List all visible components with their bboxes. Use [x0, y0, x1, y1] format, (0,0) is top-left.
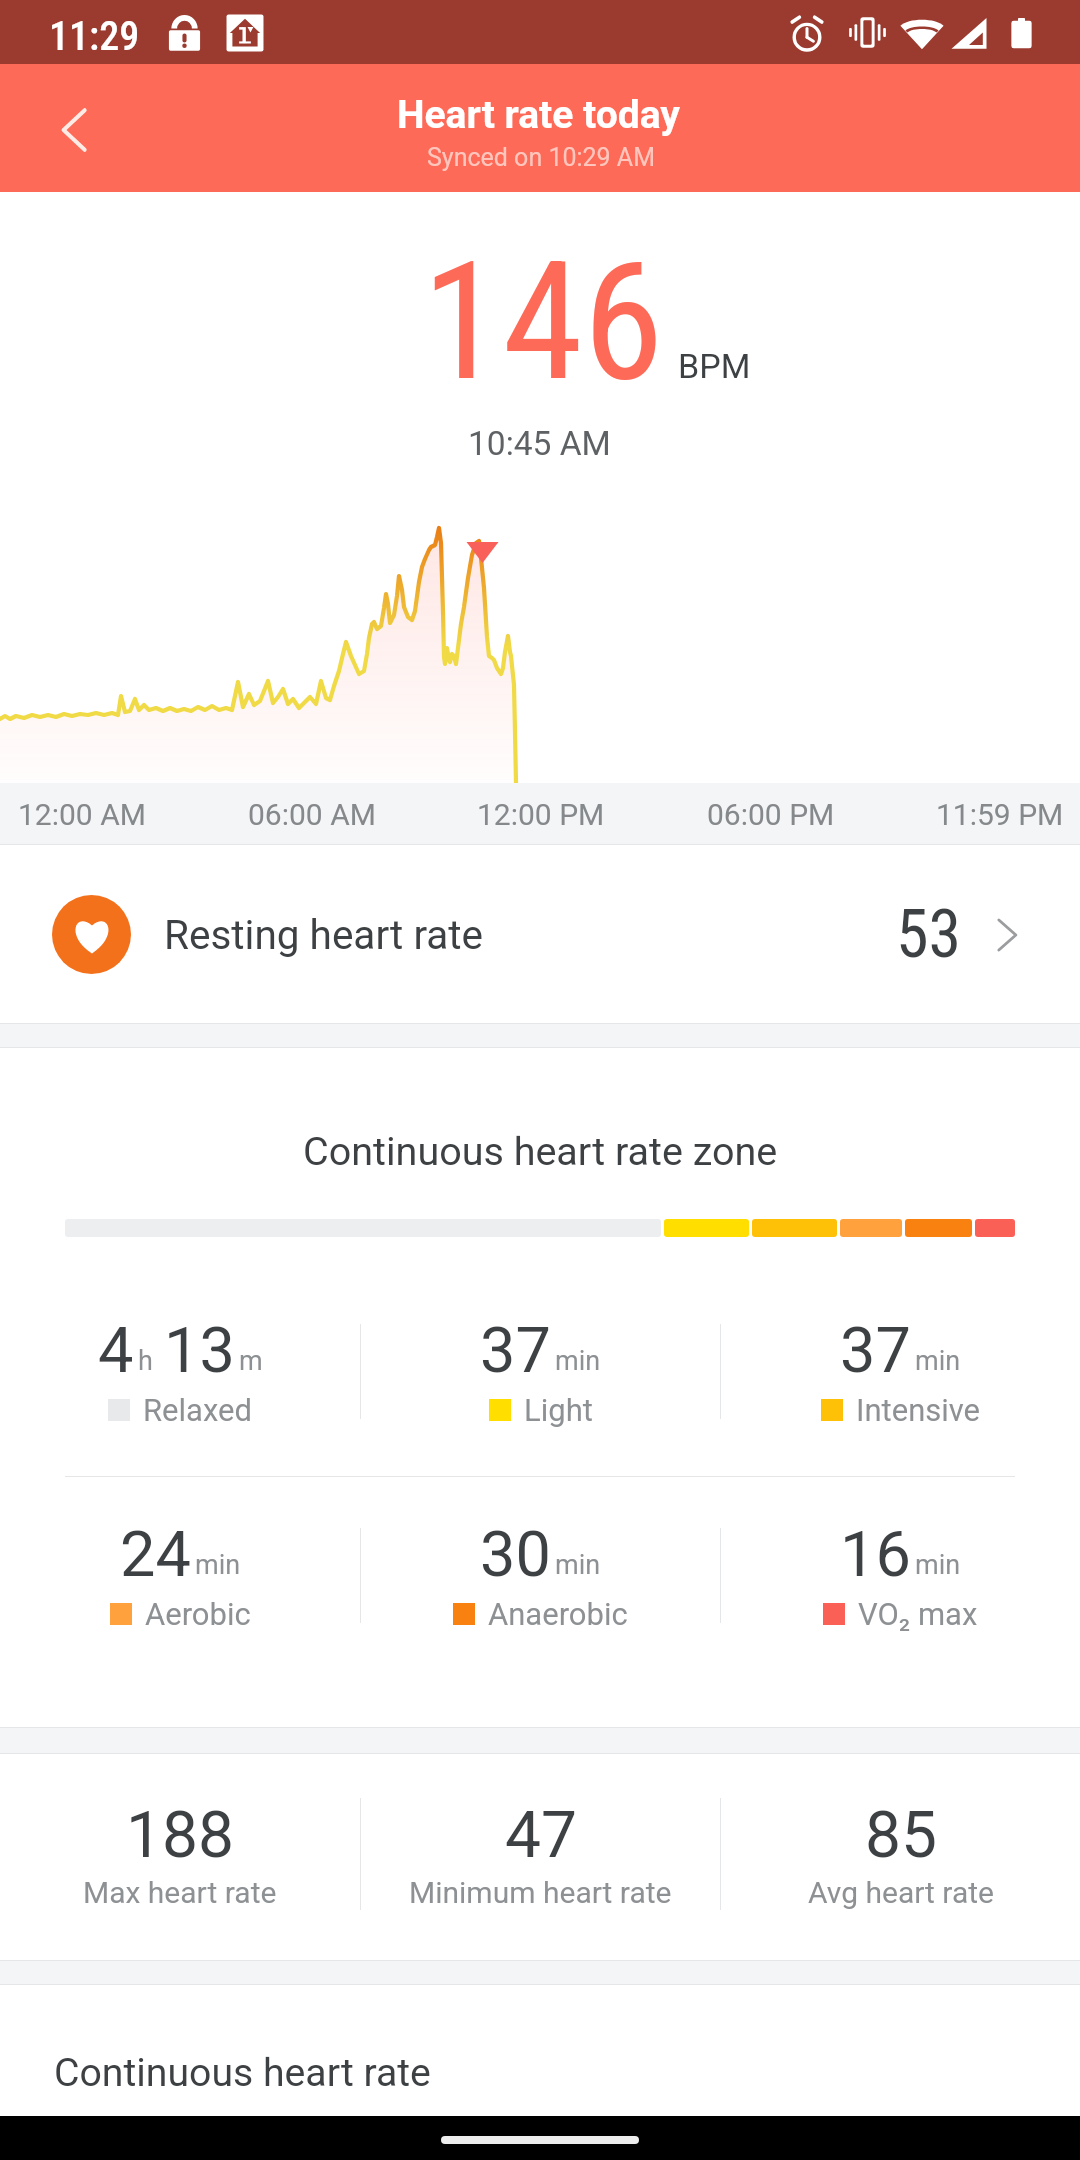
staticText: 4	[98, 1314, 134, 1388]
staticText: 06:00 AM	[248, 797, 376, 832]
staticText: Synced on 10:29 AM	[427, 143, 655, 172]
staticText: 188	[126, 1798, 234, 1873]
staticText: 12:00 AM	[18, 797, 146, 832]
staticText: BPM	[678, 346, 751, 386]
staticText: Intensive	[856, 1392, 981, 1428]
staticText: Anaerobic	[488, 1596, 628, 1632]
staticText: Continuous heart rate zone	[303, 1128, 778, 1174]
staticText: 06:00 PM	[707, 797, 835, 832]
staticText: 85	[865, 1798, 937, 1873]
button[interactable]: Resting heart rate	[0, 845, 1080, 1024]
staticText: Avg heart rate	[808, 1875, 994, 1910]
staticText: m	[239, 1345, 263, 1377]
staticText: min	[555, 1345, 601, 1377]
staticText: 37	[480, 1314, 551, 1388]
staticText: Light	[524, 1392, 593, 1428]
staticText: 146	[422, 227, 664, 418]
staticText: min	[195, 1549, 241, 1581]
button[interactable]: Continuous heart rate	[0, 1985, 1080, 2116]
staticText: 37	[840, 1314, 911, 1388]
staticText: 16	[840, 1518, 911, 1592]
staticText: h	[138, 1345, 153, 1377]
staticText: 30	[480, 1518, 551, 1592]
button[interactable]: Back	[0, 64, 148, 192]
staticText: Max heart rate	[83, 1875, 277, 1910]
staticText: Heart rate today	[397, 92, 680, 138]
staticText: 47	[505, 1798, 577, 1873]
staticText: Aerobic	[145, 1596, 251, 1632]
staticText: 12:00 PM	[477, 797, 605, 832]
staticText: Minimum heart rate	[409, 1875, 672, 1910]
staticText: min	[555, 1549, 601, 1581]
staticText: 11:59 PM	[936, 797, 1064, 832]
staticText: min	[915, 1345, 961, 1377]
staticText: Relaxed	[143, 1392, 252, 1428]
staticText: 24	[120, 1518, 191, 1592]
staticText: 11:29	[49, 13, 140, 60]
staticText: 13	[164, 1314, 235, 1388]
staticText: Resting heart rate	[164, 911, 484, 958]
staticText: min	[915, 1549, 961, 1581]
staticText: Continuous heart rate	[54, 2050, 431, 2096]
staticText: VO₂ max	[858, 1596, 978, 1632]
staticText: 53	[896, 896, 962, 973]
staticText: 10:45 AM	[468, 424, 611, 463]
